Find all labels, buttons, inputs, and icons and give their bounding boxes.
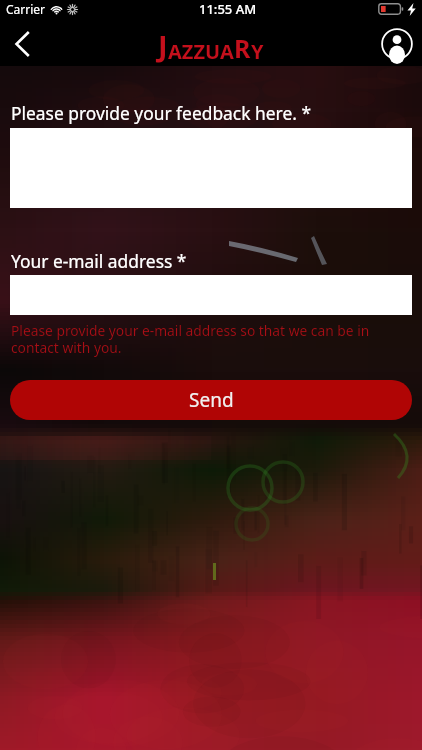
staticText: J xyxy=(158,26,168,65)
button[interactable]: Back xyxy=(0,22,44,66)
staticText: Y xyxy=(251,38,264,65)
staticText: Your e-mail address * xyxy=(11,249,187,273)
staticText: Carrier xyxy=(6,1,46,17)
staticText: 11:55 AM xyxy=(199,0,257,18)
button[interactable]: Profile xyxy=(378,25,416,63)
staticText: Send xyxy=(189,387,234,413)
staticText: Please provide your feedback here. * xyxy=(11,101,311,125)
button[interactable]: Send xyxy=(10,380,412,420)
staticText: Please provide your e-mail address so th… xyxy=(11,321,370,357)
staticText: AZZUA xyxy=(168,38,234,65)
staticText: R xyxy=(234,31,251,65)
